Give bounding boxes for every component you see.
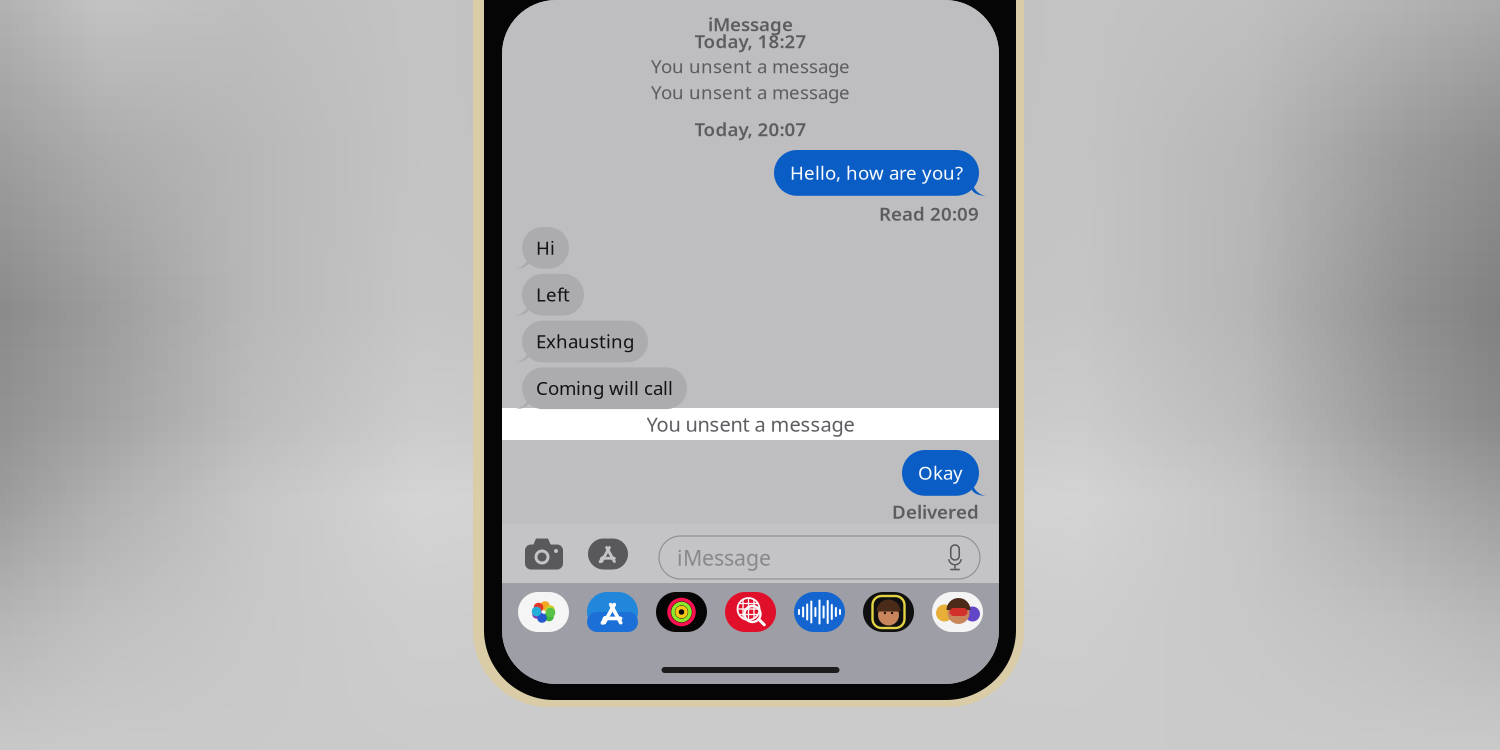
staticText: Read 20:09 — [879, 201, 979, 226]
staticText: Exhausting — [536, 329, 634, 353]
staticText: iMessage — [708, 12, 793, 36]
button[interactable]: Memoji — [863, 592, 914, 632]
button[interactable]: App Store — [587, 592, 638, 632]
staticText: Hello, how are you? — [790, 160, 963, 185]
staticText: iMessage — [677, 543, 771, 572]
button[interactable]: Stickers — [932, 592, 983, 632]
button[interactable]: Audio Message — [794, 592, 845, 632]
staticText: You unsent a message — [651, 54, 850, 78]
button[interactable]: Take photo — [521, 534, 567, 574]
staticText: Delivered — [892, 499, 979, 524]
staticText: Okay — [918, 460, 963, 485]
button[interactable]: Photos — [518, 592, 569, 632]
button[interactable]: iMessage — [659, 536, 980, 579]
staticText: Coming will call — [536, 375, 673, 400]
button[interactable]: Image Search — [725, 592, 776, 632]
staticText: Hi — [536, 235, 555, 260]
staticText: You unsent a message — [646, 411, 854, 437]
staticText: Today, 20:07 — [694, 117, 806, 141]
staticText: Today, 18:27 — [694, 29, 806, 53]
button[interactable]: Fitness — [656, 592, 707, 632]
staticText: Left — [536, 282, 570, 307]
button[interactable]: Apps — [588, 534, 636, 574]
staticText: You unsent a message — [651, 80, 850, 104]
